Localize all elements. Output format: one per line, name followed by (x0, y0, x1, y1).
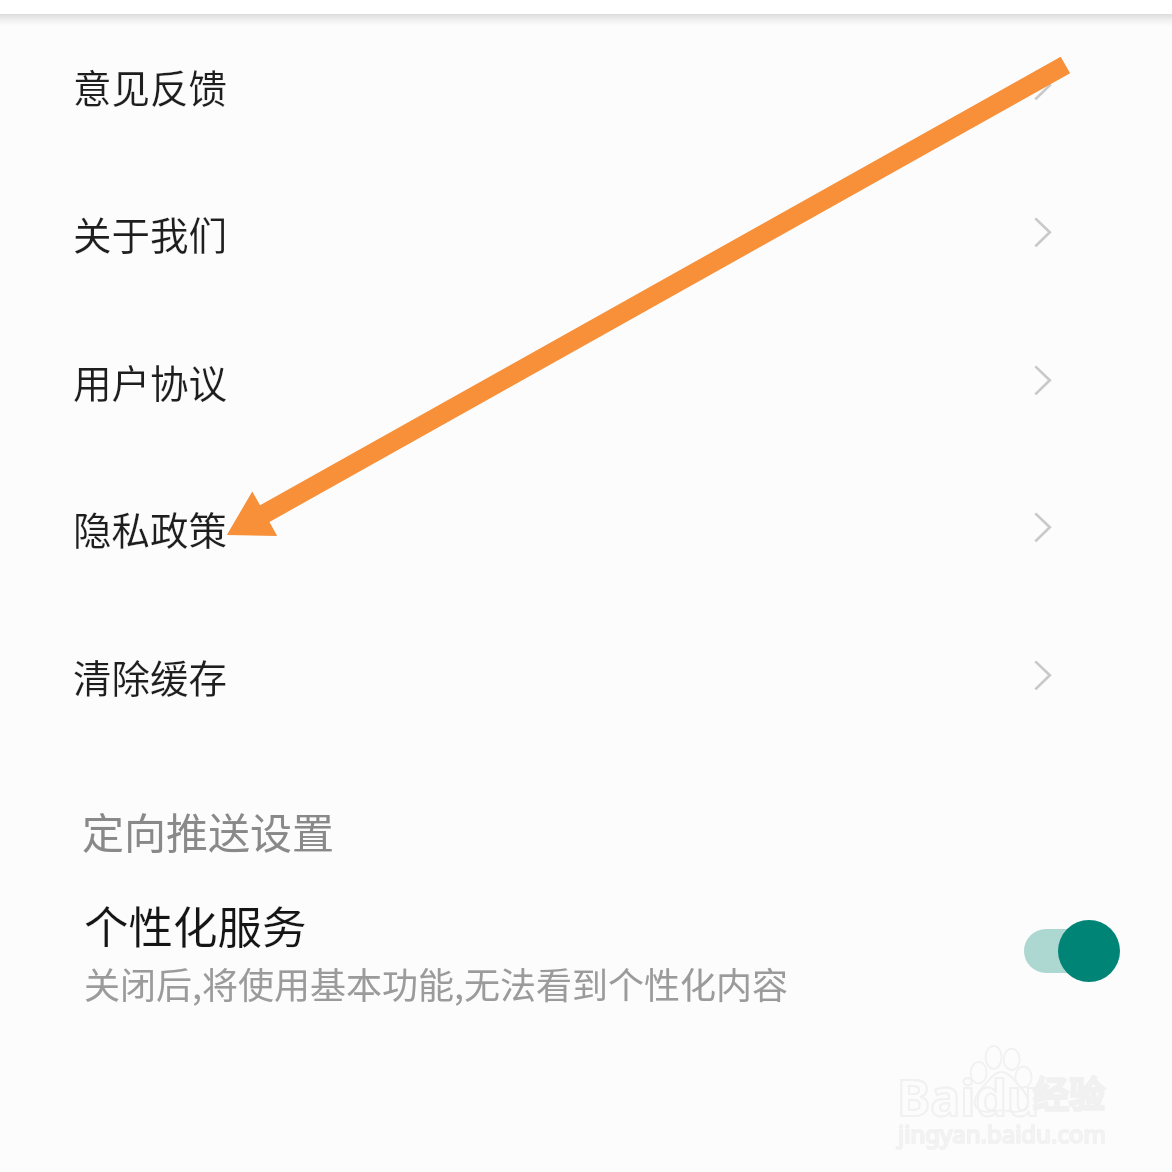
staticText: 关于我们 (73, 205, 228, 261)
staticText: 关闭后,将使用基本功能,无法看到个性化内容 (84, 957, 789, 1009)
button[interactable]: 个性化服务开关 (1022, 918, 1122, 984)
button[interactable]: 清除缓存 (0, 602, 1172, 750)
staticText: 经验 (1033, 1066, 1106, 1118)
staticText: 用户协议 (73, 353, 228, 409)
button[interactable]: 关于我们 (0, 159, 1172, 307)
button[interactable]: 个性化服务 (0, 885, 1172, 1015)
staticText: 意见反馈 (73, 58, 228, 114)
staticText: 隐私政策 (73, 500, 228, 556)
staticText: 定向推送设置 (82, 800, 335, 861)
staticText: 清除缓存 (73, 648, 228, 704)
button[interactable]: 意见反馈 (0, 12, 1172, 160)
staticText: 个性化服务 (84, 892, 307, 956)
staticText: jingyan.baidu.com (898, 1117, 1106, 1150)
staticText: Baidu (897, 1063, 1040, 1131)
button[interactable]: 隐私政策 (0, 454, 1172, 602)
button[interactable]: 用户协议 (0, 307, 1172, 455)
